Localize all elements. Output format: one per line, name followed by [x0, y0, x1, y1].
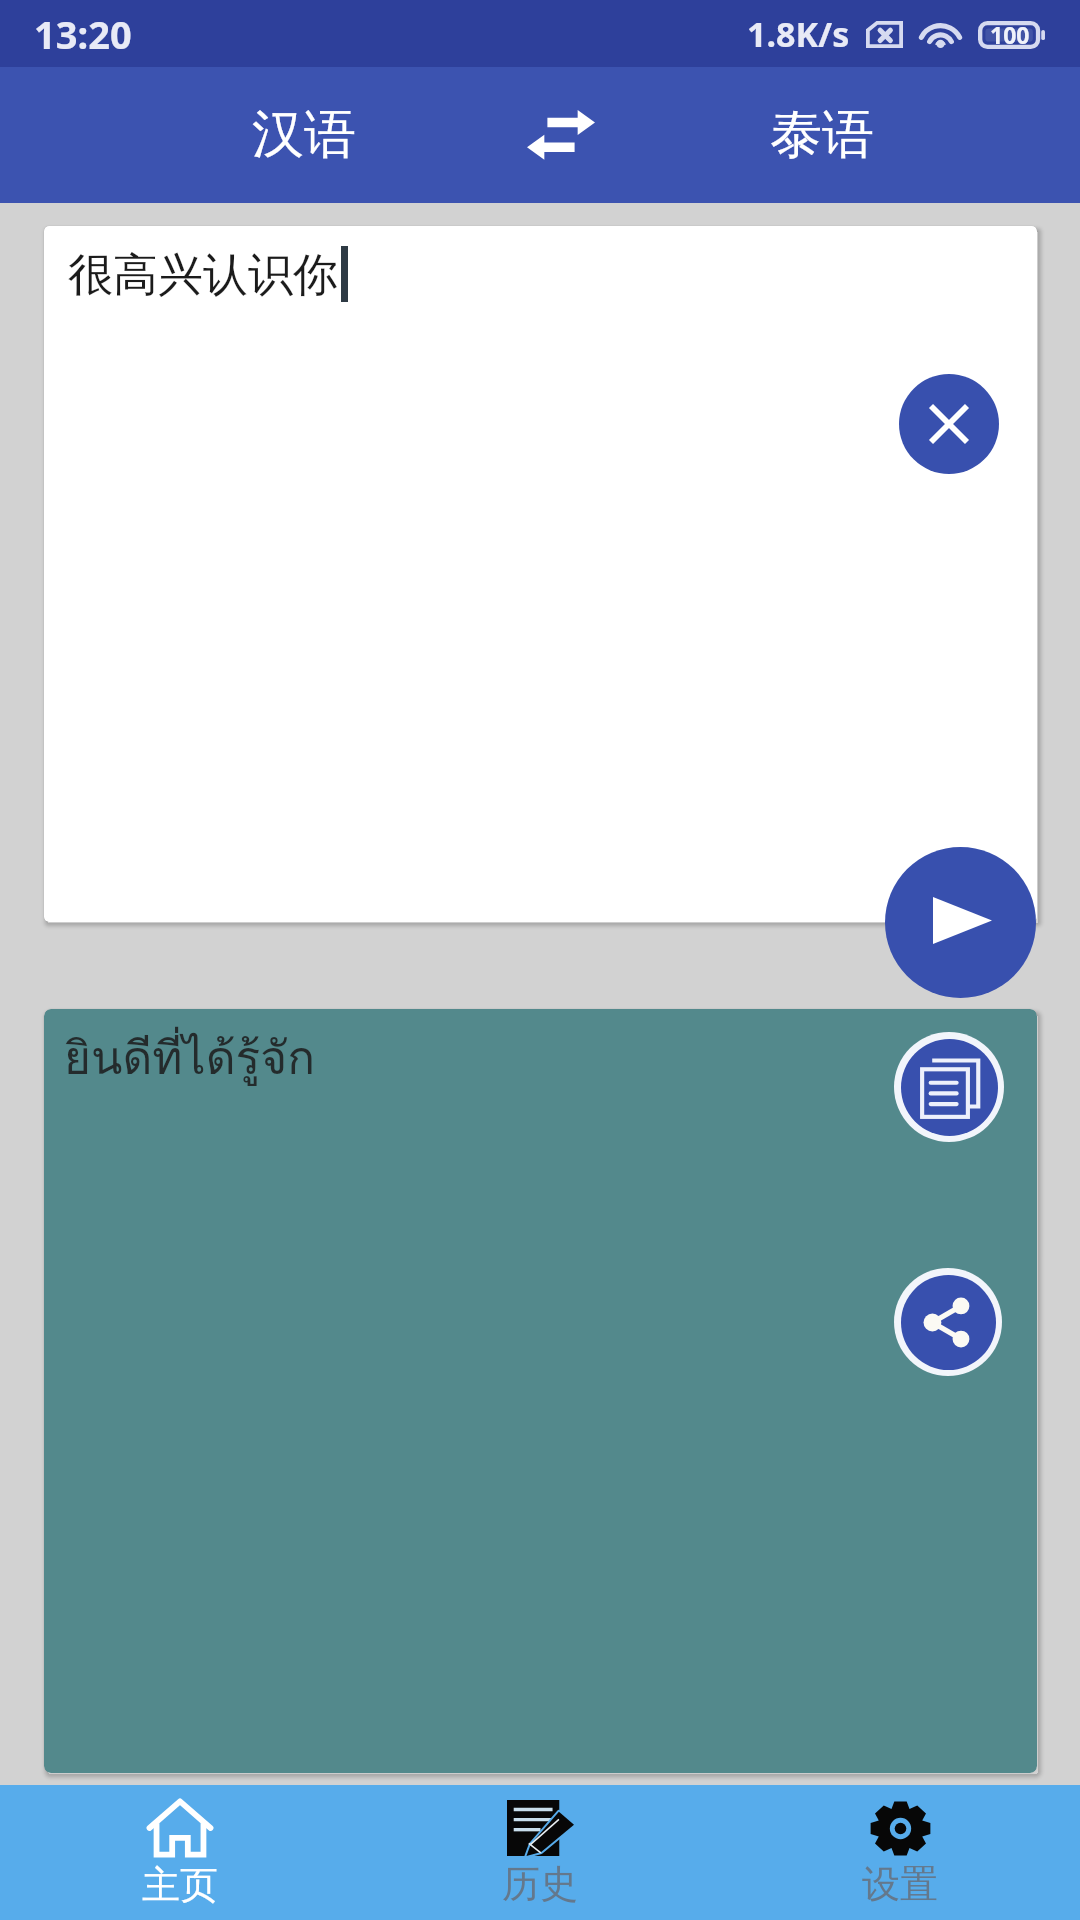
staticText: 历史 — [502, 1860, 578, 1908]
staticText: 100 — [990, 19, 1030, 50]
staticText: 汉语 — [252, 102, 356, 168]
staticText: 很高兴认识你 — [68, 247, 338, 304]
staticText: 泰语 — [770, 102, 874, 168]
button[interactable]: 泰语 — [672, 67, 972, 203]
button[interactable]: Copy translation — [894, 1032, 1004, 1142]
staticText: 1.8K/s — [747, 11, 850, 57]
staticText: 设置 — [862, 1860, 938, 1908]
button[interactable]: Swap languages — [461, 67, 661, 203]
button[interactable]: Clear text — [899, 374, 999, 474]
staticText: 主页 — [142, 1861, 218, 1909]
staticText: ยินดีที่ได้รู้จัก — [64, 1021, 316, 1094]
button[interactable]: Share translation — [894, 1268, 1002, 1376]
button[interactable]: 设置 — [720, 1785, 1080, 1920]
button[interactable]: Play pronunciation — [885, 847, 1036, 998]
button[interactable]: 历史 — [360, 1785, 720, 1920]
button[interactable]: ยินดีที่ได้รู้จัก — [44, 1009, 1037, 1773]
button[interactable]: 很高兴认识你 — [44, 226, 1037, 922]
staticText: 13:20 — [34, 8, 132, 60]
button[interactable]: 汉语 — [154, 67, 454, 203]
button[interactable]: 主页 — [0, 1785, 360, 1920]
